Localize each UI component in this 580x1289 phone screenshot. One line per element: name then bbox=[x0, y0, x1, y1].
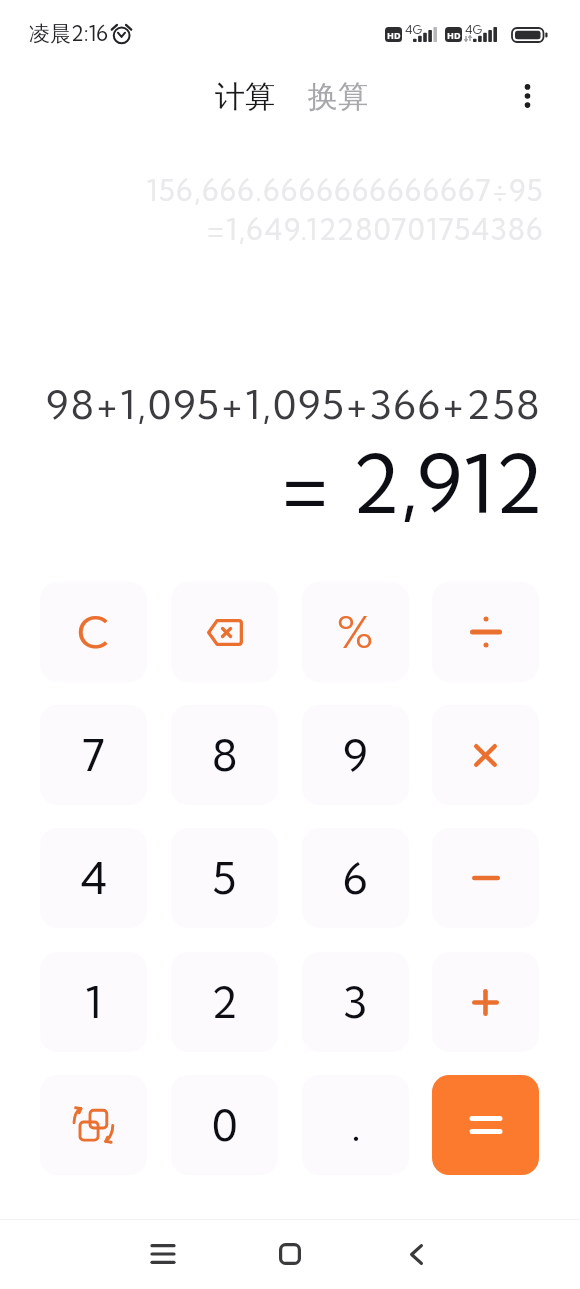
staticText: 9 bbox=[343, 728, 368, 783]
staticText: 3 bbox=[343, 975, 368, 1030]
button[interactable]: Delete bbox=[171, 582, 278, 682]
button[interactable]: Back bbox=[392, 1230, 440, 1278]
staticText: 1 bbox=[85, 975, 102, 1030]
button[interactable]: 5 bbox=[171, 828, 278, 928]
staticText: =1,649.12280701754386 bbox=[206, 211, 544, 247]
staticText: 凌晨2:16 bbox=[29, 20, 109, 47]
staticText: 156,666.6666666666667÷95 bbox=[146, 172, 544, 208]
button[interactable]: Unit convert bbox=[40, 1075, 147, 1175]
button[interactable]: More options bbox=[505, 74, 549, 118]
staticText: HD bbox=[387, 29, 401, 41]
staticText: 0 bbox=[212, 1098, 238, 1153]
button[interactable]: 计算 bbox=[209, 72, 281, 122]
button[interactable]: 9 bbox=[302, 705, 409, 805]
staticText: HD bbox=[447, 29, 461, 41]
button[interactable]: Home bbox=[266, 1230, 314, 1278]
button[interactable]: 4 bbox=[40, 828, 147, 928]
button[interactable]: Add bbox=[432, 952, 539, 1052]
button[interactable]: 1 bbox=[40, 952, 147, 1052]
staticText: 4 bbox=[80, 851, 108, 906]
staticText: 计算 bbox=[215, 78, 275, 116]
button[interactable]: Multiply bbox=[432, 705, 539, 805]
staticText: 2 bbox=[211, 975, 238, 1030]
button[interactable]: % bbox=[302, 582, 409, 682]
staticText: . bbox=[351, 1098, 361, 1153]
staticText: 4G bbox=[405, 22, 423, 37]
staticText: C bbox=[77, 605, 110, 660]
button[interactable]: 7 bbox=[40, 705, 147, 805]
staticText: 98+1,095+1,095+366+258 bbox=[46, 380, 542, 430]
button[interactable]: Equals bbox=[432, 1075, 539, 1175]
button[interactable]: C bbox=[40, 582, 147, 682]
staticText: = 2,912 bbox=[280, 433, 544, 533]
staticText: 换算 bbox=[308, 78, 368, 116]
staticText: 6 bbox=[343, 851, 368, 906]
button[interactable]: 2 bbox=[171, 952, 278, 1052]
button[interactable]: 3 bbox=[302, 952, 409, 1052]
staticText: % bbox=[337, 605, 374, 660]
staticText: 8 bbox=[212, 728, 238, 783]
staticText: 7 bbox=[82, 728, 105, 783]
button[interactable]: 8 bbox=[171, 705, 278, 805]
staticText: 4G bbox=[465, 22, 483, 37]
button[interactable]: Recent apps bbox=[139, 1230, 187, 1278]
button[interactable]: 0 bbox=[171, 1075, 278, 1175]
button[interactable]: Divide bbox=[432, 582, 539, 682]
staticText: 5 bbox=[212, 851, 237, 906]
button[interactable]: . bbox=[302, 1075, 409, 1175]
button[interactable]: Subtract bbox=[432, 828, 539, 928]
button[interactable]: 换算 bbox=[302, 72, 374, 122]
button[interactable]: 6 bbox=[302, 828, 409, 928]
